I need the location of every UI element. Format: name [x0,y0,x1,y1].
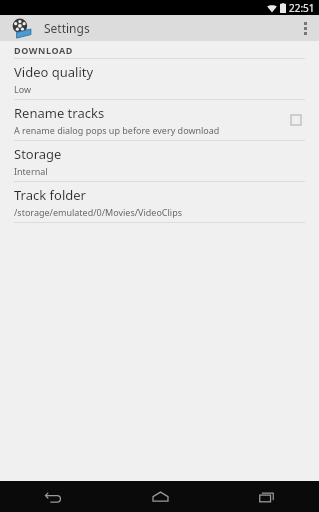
button[interactable]: Rename tracks [0,100,319,140]
button[interactable]: Home [107,481,213,512]
button[interactable]: Rename tracks toggle [285,109,307,131]
staticText: 22:51 [289,1,315,15]
button[interactable]: Recents [213,481,319,512]
button[interactable]: Track folder [0,182,319,222]
staticText: A rename dialog pops up before every dow… [14,124,220,136]
button[interactable]: App icon [10,17,32,39]
staticText: Settings [44,20,90,36]
staticText: /storage/emulated/0/Movies/VideoClips [14,206,183,218]
button[interactable]: Storage [0,141,319,181]
staticText: Internal [14,165,48,177]
staticText: Rename tracks [14,104,105,122]
staticText: Video quality [14,63,94,81]
staticText: Storage [14,145,62,163]
staticText: DOWNLOAD [14,44,74,56]
button[interactable]: Back [0,481,107,512]
staticText: Low [14,83,32,95]
staticText: Track folder [14,186,86,204]
button[interactable]: Video quality [0,59,319,99]
button[interactable]: More options [291,15,319,41]
